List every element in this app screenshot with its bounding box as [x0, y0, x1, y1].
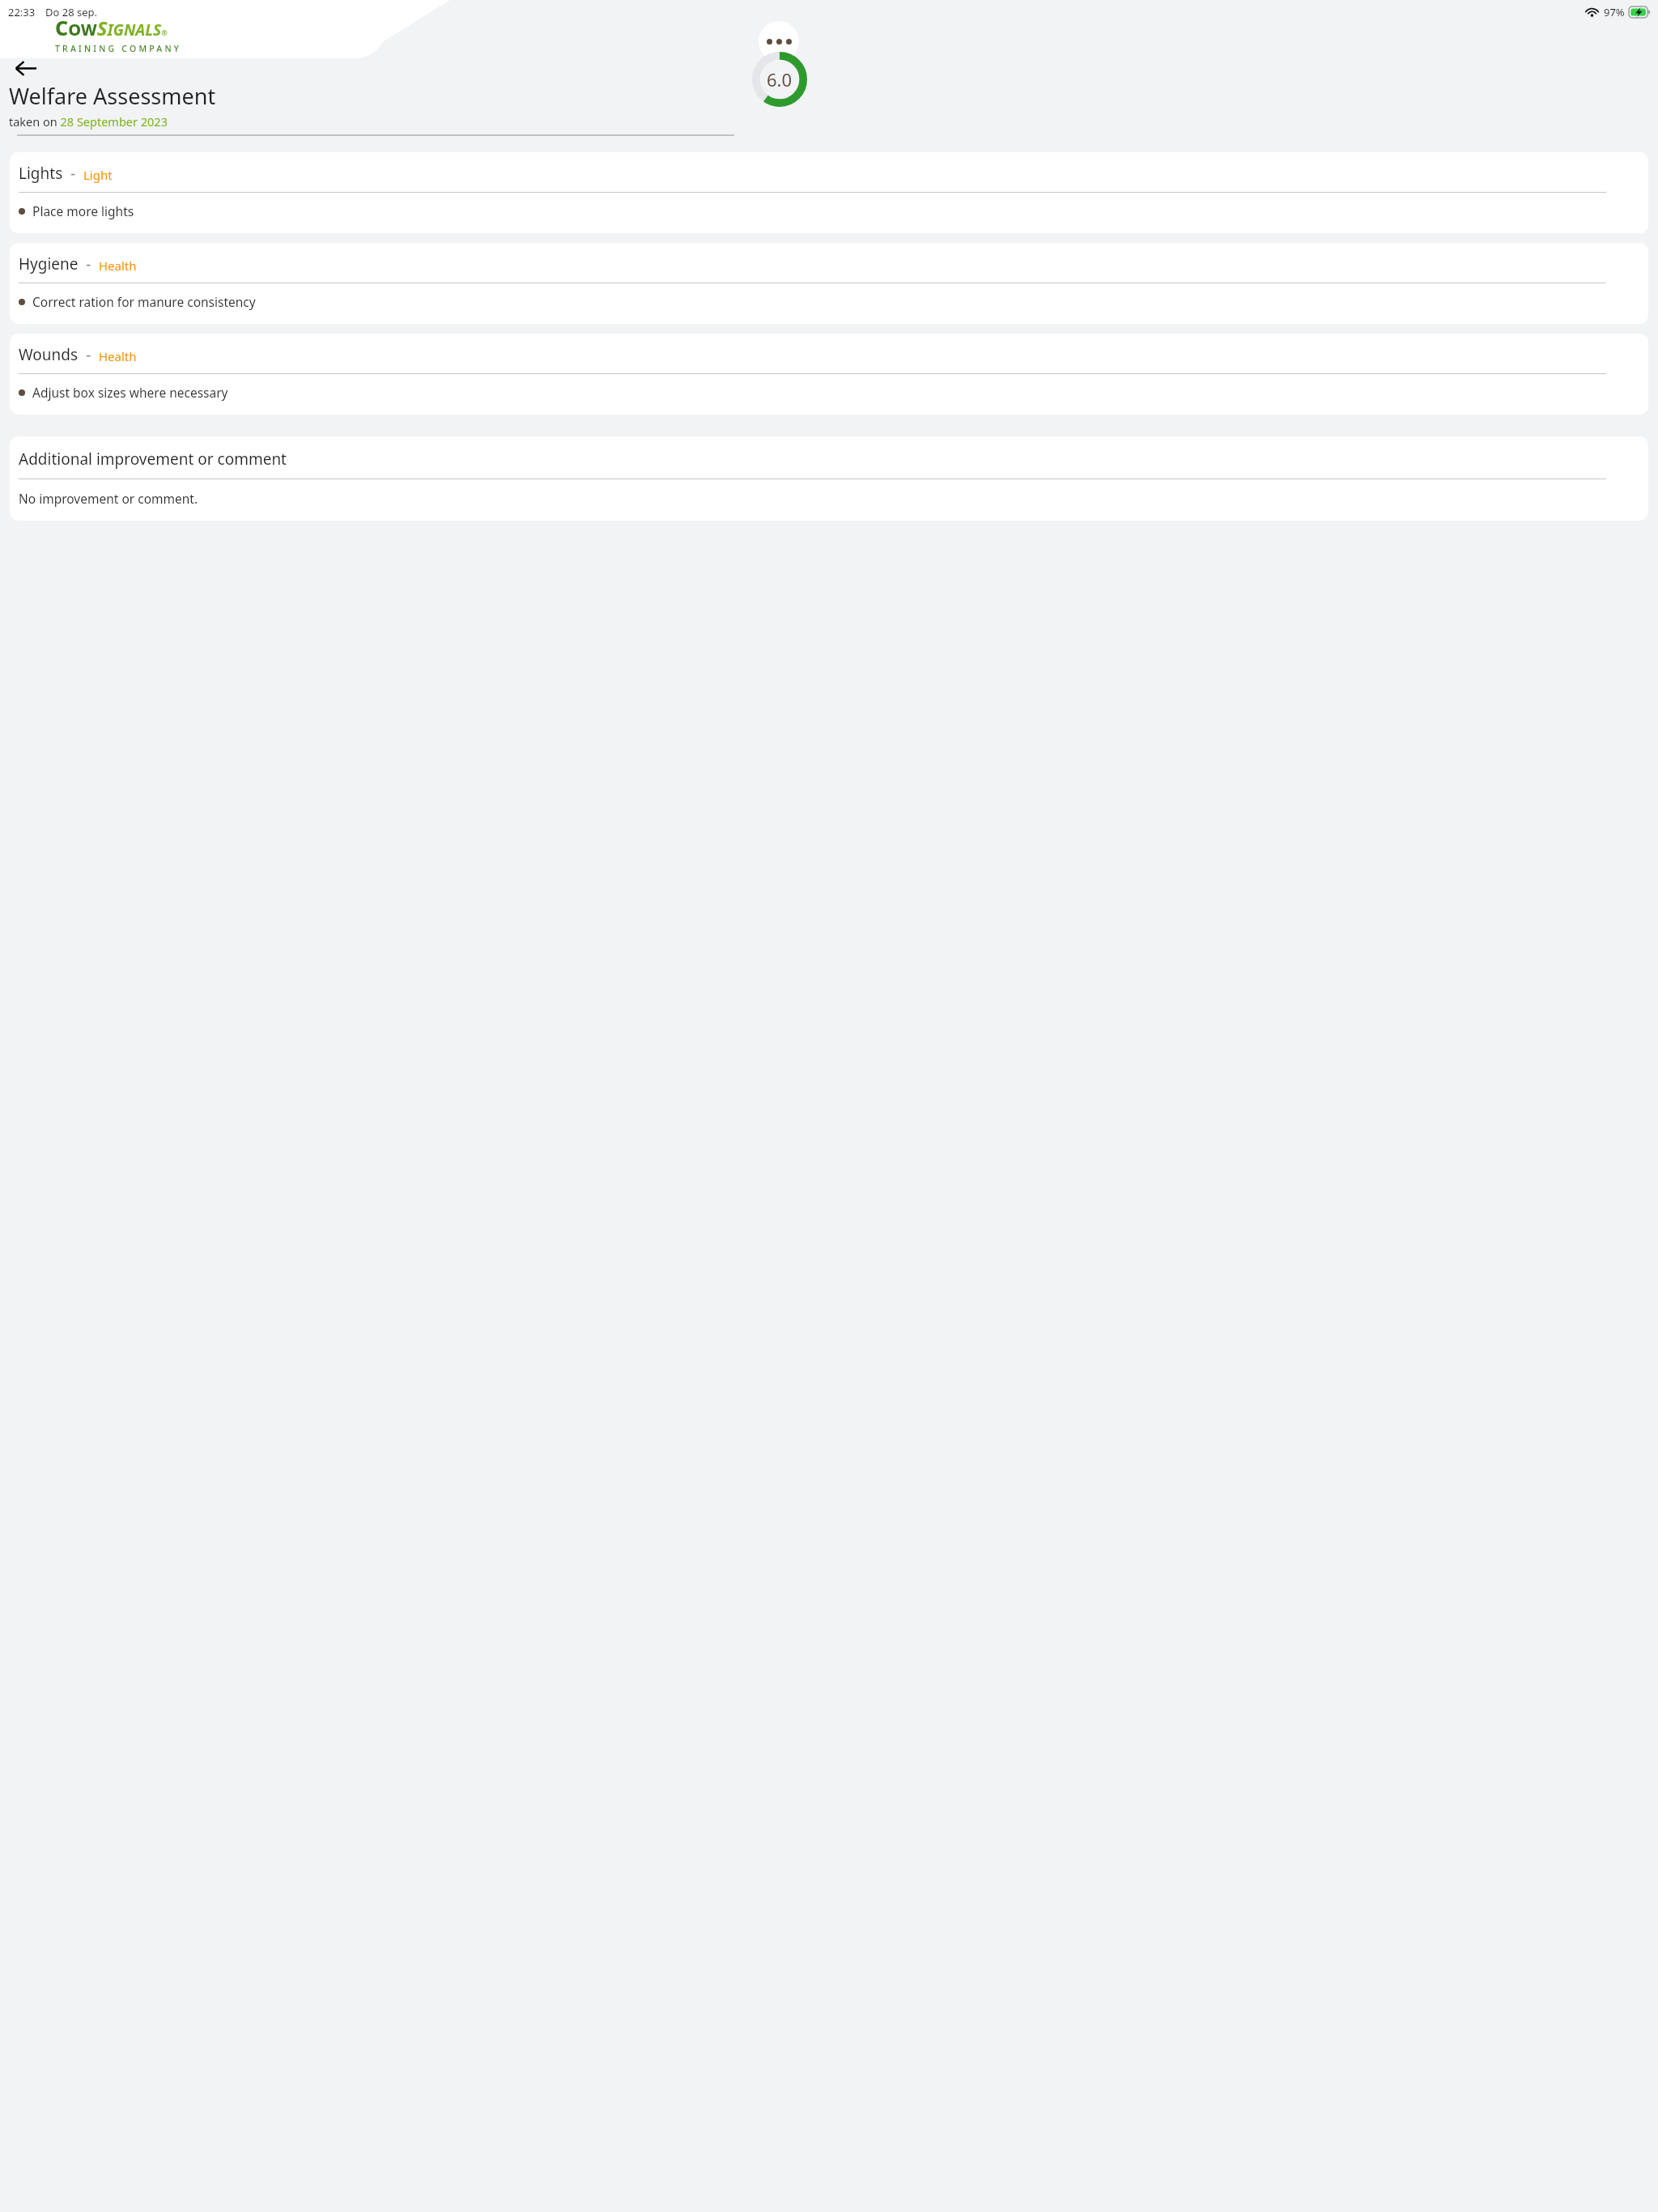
staticText: Health [99, 257, 137, 274]
button[interactable]: Hygiene [10, 243, 1648, 324]
staticText: Do 28 sep. [45, 5, 98, 19]
staticText: 97% [1604, 5, 1625, 19]
staticText: taken on 28 September 2023 [9, 113, 168, 130]
staticText: - [79, 345, 99, 365]
staticText: COWSIGNALS® [55, 14, 168, 41]
staticText: Hygiene [19, 253, 79, 274]
button[interactable]: Additional improvement or comment [10, 436, 1648, 521]
staticText: Correct ration for manure consistency [32, 293, 256, 310]
staticText: 22:33 [8, 5, 36, 19]
staticText: - [63, 164, 83, 184]
button[interactable]: More options [759, 21, 799, 62]
staticText: Lights [19, 163, 63, 184]
button[interactable]: Lights [10, 152, 1648, 233]
staticText: TRAINING COMPANY [55, 43, 182, 54]
button[interactable]: Back [6, 49, 45, 87]
staticText: Light [83, 167, 113, 183]
staticText: Place more lights [32, 202, 134, 219]
staticText: Adjust box sizes where necessary [32, 384, 228, 401]
staticText: Health [99, 348, 137, 364]
staticText: - [79, 254, 99, 274]
staticText: Additional improvement or comment [19, 449, 287, 470]
staticText: 6.0 [767, 67, 793, 91]
staticText: Wounds [19, 344, 79, 365]
staticText: Welfare Assessment [9, 81, 216, 111]
staticText: No improvement or comment. [19, 490, 198, 507]
button[interactable]: Wounds [10, 334, 1648, 415]
